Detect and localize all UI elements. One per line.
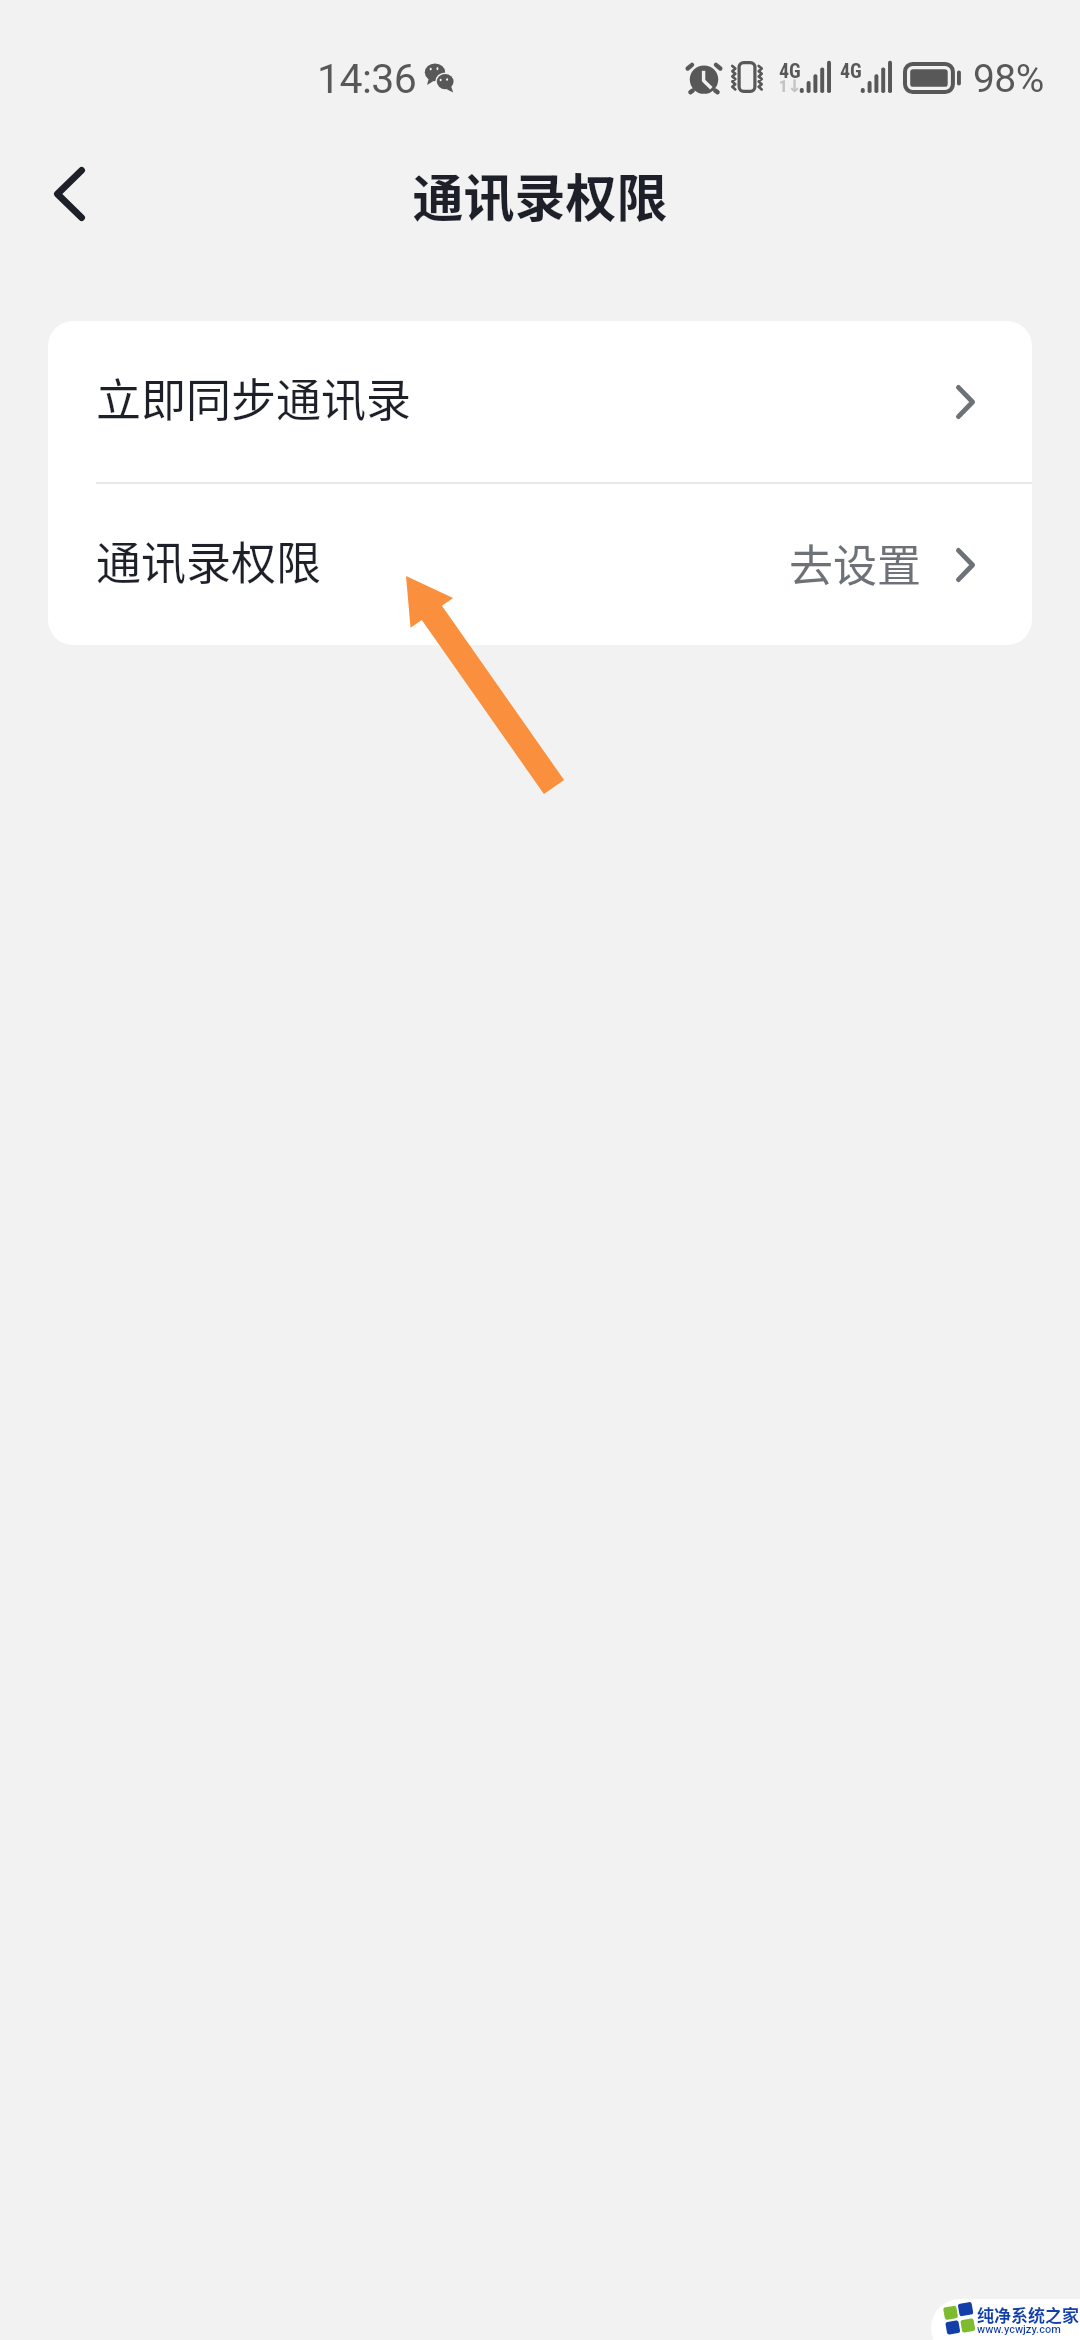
staticText: 4G [779, 59, 801, 82]
staticText: 立即同步通讯录 [96, 365, 412, 430]
staticText: 纯净系统之家 [977, 2302, 1079, 2327]
staticText: 98% [973, 56, 1044, 102]
staticText: 4G [840, 59, 862, 82]
button[interactable]: 通讯录权限 [48, 484, 1032, 645]
staticText: 14:36 [317, 55, 417, 103]
staticText: www.ycwjzy.com [977, 2323, 1061, 2336]
staticText: 1↓ [779, 76, 802, 96]
staticText: 通讯录权限 [0, 158, 1080, 232]
staticText: 通讯录权限 [96, 528, 322, 593]
staticText: 去设置 [789, 531, 921, 595]
button[interactable]: 立即同步通讯录 [48, 321, 1032, 482]
button[interactable]: Back [5, 130, 133, 258]
